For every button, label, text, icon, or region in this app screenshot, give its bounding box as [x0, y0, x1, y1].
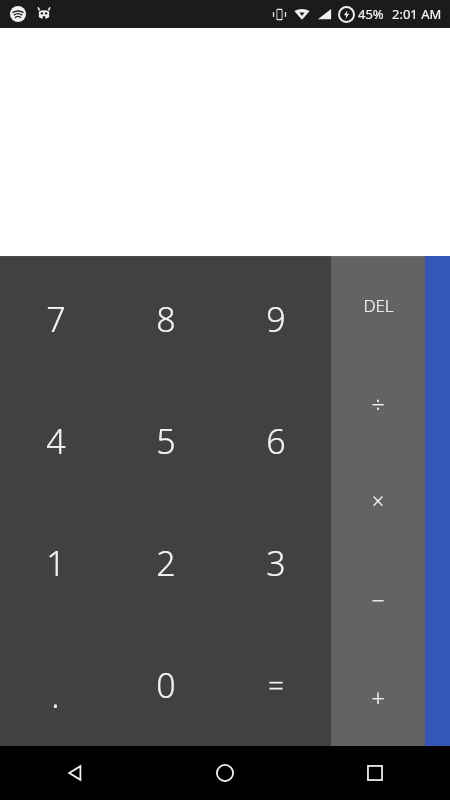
- button[interactable]: −: [331, 550, 425, 648]
- button[interactable]: .: [0, 624, 111, 746]
- staticText: 1: [46, 540, 66, 586]
- button[interactable]: 8: [111, 257, 221, 380]
- button[interactable]: Back: [0, 746, 150, 800]
- button[interactable]: 6: [221, 380, 331, 502]
- staticText: −: [371, 584, 385, 615]
- button[interactable]: 2: [111, 502, 221, 624]
- button[interactable]: =: [221, 624, 331, 746]
- button[interactable]: Recent apps: [300, 746, 450, 800]
- staticText: DEL: [363, 294, 394, 317]
- staticText: 4: [46, 418, 66, 464]
- staticText: 3: [266, 540, 286, 586]
- button[interactable]: 5: [111, 380, 221, 502]
- button[interactable]: 7: [0, 257, 111, 380]
- staticText: 2: [156, 540, 176, 586]
- staticText: 5: [156, 418, 176, 464]
- staticText: 0: [156, 662, 176, 708]
- button[interactable]: 4: [0, 380, 111, 502]
- staticText: ÷: [371, 388, 385, 419]
- staticText: ×: [372, 487, 384, 516]
- staticText: 8: [156, 296, 176, 342]
- staticText: 2:01 AM: [392, 5, 442, 23]
- staticText: 9: [266, 296, 286, 342]
- button[interactable]: 3: [221, 502, 331, 624]
- button[interactable]: 1: [0, 502, 111, 624]
- button[interactable]: ÷: [331, 354, 425, 452]
- button[interactable]: DEL: [331, 257, 425, 354]
- button[interactable]: ×: [331, 452, 425, 550]
- button[interactable]: 0: [111, 624, 221, 746]
- staticText: +: [371, 682, 385, 713]
- staticText: 6: [266, 418, 286, 464]
- staticText: 7: [46, 296, 66, 342]
- staticText: =: [268, 666, 284, 704]
- button[interactable]: +: [331, 648, 425, 746]
- button[interactable]: 9: [221, 257, 331, 380]
- staticText: .: [51, 672, 60, 718]
- button[interactable]: Home: [150, 746, 300, 800]
- staticText: 45%: [358, 5, 384, 23]
